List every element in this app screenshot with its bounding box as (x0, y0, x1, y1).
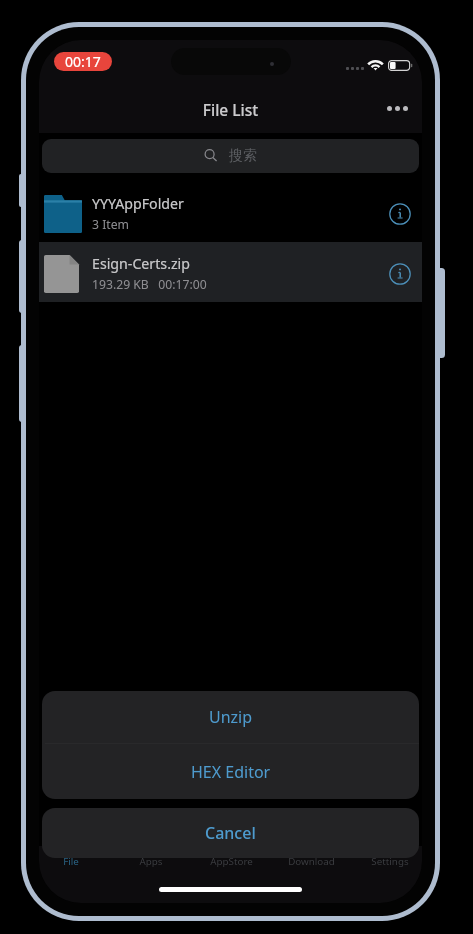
staticText: Esign-Certs.zip (92, 254, 191, 273)
button[interactable]: Settings (352, 846, 422, 880)
button[interactable]: Cancel (42, 808, 419, 858)
button[interactable]: File (39, 846, 109, 880)
staticText: File (63, 855, 79, 868)
staticText: YYYAppFolder (92, 194, 184, 213)
staticText: 3 Item (92, 216, 129, 233)
button[interactable]: HEX Editor (42, 744, 419, 799)
staticText: Settings (371, 855, 409, 868)
staticText: 193.29 KB 00:17:00 (92, 276, 207, 293)
button[interactable]: 搜索 (42, 139, 419, 173)
button[interactable]: YYYAppFolder (39, 182, 422, 242)
staticText: Apps (139, 855, 163, 868)
staticText: Cancel (205, 822, 256, 844)
button[interactable]: Info (380, 254, 420, 294)
button[interactable]: Esign-Certs.zip (39, 242, 422, 302)
button[interactable]: Info (380, 194, 420, 234)
button[interactable]: Download (273, 846, 349, 880)
button[interactable]: More options (379, 90, 415, 126)
button[interactable]: Apps (113, 846, 189, 880)
staticText: File List (39, 99, 422, 120)
staticText: 搜索 (229, 147, 257, 165)
staticText: 00:17 (65, 52, 101, 71)
staticText: HEX Editor (191, 761, 271, 783)
staticText: Download (288, 855, 335, 868)
button[interactable]: AppStore (193, 846, 269, 880)
staticText: Unzip (209, 706, 253, 728)
button[interactable]: Unzip (42, 691, 419, 743)
staticText: AppStore (210, 855, 253, 868)
